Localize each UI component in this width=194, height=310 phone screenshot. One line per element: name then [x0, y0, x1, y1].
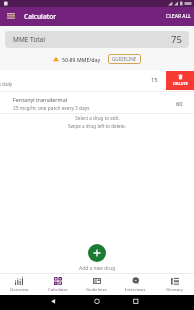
staticText: Guidelines [86, 287, 107, 293]
staticText: Swipe a drug left to delete. [68, 123, 126, 129]
button[interactable]: Interviews [116, 274, 155, 295]
staticText: 25 mcg/hr, one patch every 3 days [13, 105, 90, 112]
staticText: GUIDELINE [112, 56, 137, 62]
button[interactable]: Fentanyl transdermal [0, 93, 194, 114]
staticText: CLEAR ALL [166, 13, 191, 20]
button[interactable]: Guidelines [77, 274, 116, 295]
staticText: Calculator [24, 12, 57, 21]
button[interactable]: Glossary [155, 274, 194, 295]
staticText: 75 [171, 33, 182, 46]
button[interactable]: GUIDELINE [108, 54, 141, 64]
staticText: Glossary [166, 287, 183, 293]
staticText: Add a new drug [79, 265, 116, 272]
button[interactable]: Overview [0, 274, 38, 295]
staticText: MME Total [13, 35, 45, 44]
staticText: 5 mg, 2 tablets daily [0, 81, 13, 87]
staticText: 60 [176, 100, 183, 108]
button[interactable]: Calculator [38, 274, 77, 295]
button[interactable]: MME Total [5, 31, 189, 48]
staticText: 50-89 MME/day [62, 56, 101, 63]
staticText: Interviews [125, 287, 146, 293]
staticText: Calculator [48, 287, 68, 293]
button[interactable]: Add a new drug [88, 244, 106, 262]
staticText: Fentanyl transdermal [13, 96, 68, 103]
button[interactable]: DELETE [166, 71, 194, 90]
staticText: DELETE [173, 81, 188, 87]
staticText: Overview [10, 287, 29, 293]
staticText: 15 [151, 76, 158, 84]
button[interactable]: CLEAR ALL [161, 9, 194, 24]
staticText: Select a drug to edit. [75, 115, 120, 121]
button[interactable]: Open navigation menu [2, 7, 20, 25]
